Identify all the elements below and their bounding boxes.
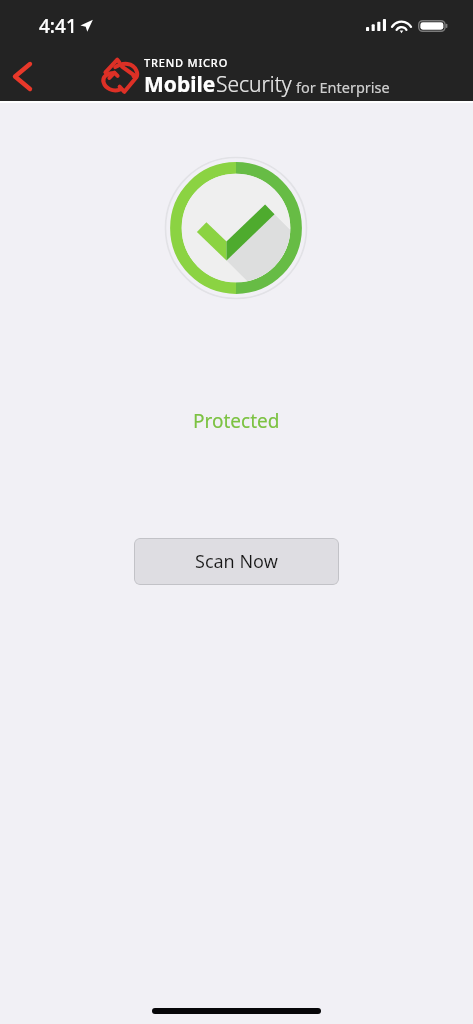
staticText: Security (216, 70, 292, 99)
staticText: for Enterprise (296, 77, 390, 97)
staticText: Scan Now (195, 549, 278, 574)
staticText: TREND MICRO (144, 55, 229, 70)
staticText: 4:41 (39, 13, 77, 39)
button[interactable]: Scan Now (134, 538, 339, 585)
staticText: Protected (193, 408, 280, 434)
staticText: Mobile (144, 70, 216, 99)
button[interactable]: Back (2, 56, 42, 96)
